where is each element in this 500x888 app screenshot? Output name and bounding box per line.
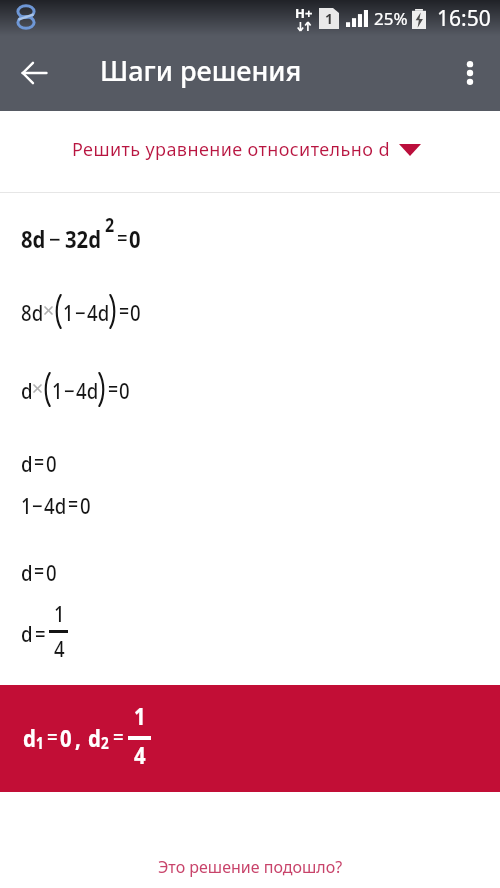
staticText: 4d <box>44 490 67 520</box>
staticText: = <box>34 448 45 477</box>
staticText: , <box>75 721 81 754</box>
staticText: = <box>68 490 79 519</box>
staticText: 1 <box>36 732 44 754</box>
staticText: = <box>117 222 128 252</box>
staticText: − <box>75 297 86 327</box>
staticText: H+ <box>295 4 313 22</box>
staticText: 0 <box>80 490 91 520</box>
staticText: = <box>47 721 58 751</box>
staticText: 2 <box>105 212 114 238</box>
staticText: 0 <box>46 448 57 478</box>
staticText: − <box>32 490 43 520</box>
staticText: 32d <box>65 222 101 255</box>
staticText: 0 <box>46 557 57 587</box>
staticText: d <box>21 375 33 405</box>
staticText: 4 <box>134 738 146 771</box>
staticText: 4d <box>76 375 99 405</box>
staticText: d <box>88 721 101 754</box>
staticText: 0 <box>119 375 130 405</box>
staticText: Шаги решения <box>100 52 302 89</box>
staticText: − <box>64 375 75 405</box>
staticText: Это решение подошло? <box>158 856 343 878</box>
staticText: 1 <box>54 598 65 628</box>
staticText: 2 <box>101 732 109 754</box>
staticText: = <box>119 297 130 326</box>
staticText: 16:50 <box>437 4 491 33</box>
staticText: 1 <box>21 490 32 520</box>
staticText: 0 <box>129 222 141 255</box>
staticText: d <box>21 448 33 478</box>
staticText: d <box>23 721 36 754</box>
staticText: 1 <box>52 375 63 405</box>
staticText: − <box>49 222 61 255</box>
button[interactable]: Решить уравнение относительно d <box>0 111 500 192</box>
button[interactable]: Это решение подошло? <box>0 842 500 888</box>
staticText: 1 <box>63 297 74 327</box>
staticText: 4 <box>54 633 65 663</box>
staticText: d <box>21 557 33 587</box>
staticText: = <box>108 375 119 404</box>
staticText: = <box>113 721 124 751</box>
button[interactable]: More options <box>446 50 494 98</box>
staticText: 1 <box>134 699 146 732</box>
staticText: 0 <box>130 297 141 327</box>
staticText: 25% <box>374 7 408 30</box>
staticText: 1 <box>325 9 334 28</box>
staticText: = <box>35 618 46 648</box>
staticText: 4d <box>87 297 110 327</box>
staticText: d <box>21 618 33 648</box>
button[interactable]: Back <box>10 50 58 98</box>
staticText: 8d <box>21 297 44 327</box>
staticText: Решить уравнение относительно d <box>72 137 390 162</box>
staticText: 8d <box>21 222 45 255</box>
staticText: = <box>34 557 45 586</box>
staticText: 0 <box>60 721 72 754</box>
